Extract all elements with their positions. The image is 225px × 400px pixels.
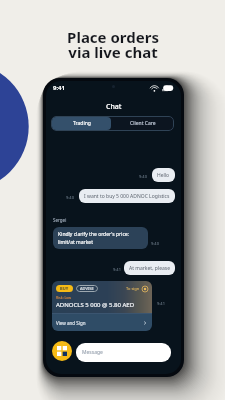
staticText: 9:40 [151,241,159,246]
staticText: Hello [157,172,170,179]
button[interactable]: Message [82,343,171,362]
button[interactable]: Kindly clarify the order's price: limit/… [58,227,143,249]
staticText: View and Sign [56,320,86,326]
staticText: 9:41 [113,267,121,272]
staticText: Place orders via live chat [67,27,159,62]
staticText: 9:41 [53,84,65,92]
staticText: Sergei [53,217,67,223]
staticText: Client Care [130,120,156,127]
staticText: ADNOCLS 5 000 @ 5.80 AED [56,301,135,309]
button[interactable]: BUY [52,281,152,331]
staticText: To sign [126,286,140,291]
staticText: Chat [106,102,122,112]
button[interactable]: At market, please [129,261,170,275]
staticText: I want to buy 5 000 ADNOC Logistics [84,193,170,200]
staticText: 9:41 [157,301,165,306]
button[interactable]: Hello [157,168,170,182]
button[interactable]: Client Care [112,116,174,131]
staticText: Trading [73,120,91,127]
staticText: Message [82,349,103,356]
staticText: BUY [60,286,69,291]
staticText: Kindly clarify the order's price: limit/… [58,231,129,245]
button[interactable]: I want to buy 5 000 ADNOC Logistics [84,189,170,203]
staticText: At market, please [129,265,170,272]
staticText: 9:40 [66,195,74,200]
staticText: Risk: Low [56,295,72,300]
staticText: ADVISE [80,286,94,291]
staticText: 9:40 [139,174,147,179]
button[interactable]: Apps [52,341,72,361]
button[interactable]: Trading [52,117,111,130]
